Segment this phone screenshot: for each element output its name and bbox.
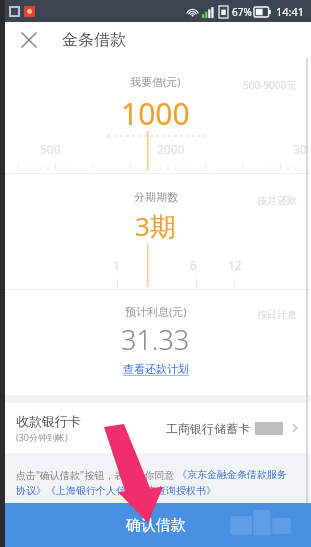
staticText: 查看还款计划 bbox=[123, 362, 189, 376]
staticText: 预计利息(元) bbox=[125, 304, 187, 319]
button[interactable]: 收款银行卡 bbox=[0, 403, 311, 453]
staticText: 30 bbox=[293, 141, 307, 157]
staticText: 按日计息 bbox=[257, 308, 297, 321]
staticText: 500-9000元 bbox=[243, 78, 297, 92]
staticText: 31.33 bbox=[121, 321, 190, 358]
staticText: 14:41 bbox=[276, 4, 305, 19]
staticText: 分期期数 bbox=[134, 190, 178, 204]
button[interactable]: 确认借款 bbox=[0, 503, 311, 547]
staticText: 我要借(元) bbox=[130, 74, 181, 89]
staticText: 点击"确认借款"按钮，表示着你同意 bbox=[16, 468, 177, 482]
staticText: 1000 bbox=[121, 93, 190, 134]
staticText: 1 bbox=[113, 257, 120, 273]
staticText: 按月还款 bbox=[257, 194, 297, 207]
staticText: 收款银行卡 bbox=[16, 413, 81, 429]
button[interactable]: Close bbox=[16, 27, 42, 53]
staticText: 6 bbox=[190, 257, 197, 273]
staticText: 确认借款 bbox=[126, 516, 186, 535]
staticText: (30分钟到帐) bbox=[16, 431, 68, 443]
staticText: 工商银行储蓄卡 bbox=[166, 421, 250, 436]
staticText: 2000 bbox=[157, 141, 185, 157]
button[interactable]: 协议》《上海银行个人信用报告查询授权书》 bbox=[16, 484, 216, 497]
button[interactable]: 《京东金融金条借款服务 bbox=[177, 468, 287, 481]
staticText: 67% bbox=[232, 5, 252, 19]
staticText: 500 bbox=[40, 141, 61, 157]
staticText: 金条借款 bbox=[62, 30, 126, 50]
staticText: 12 bbox=[228, 257, 242, 273]
button[interactable]: 查看还款计划 bbox=[119, 360, 193, 378]
staticText: 3期 bbox=[135, 208, 176, 244]
